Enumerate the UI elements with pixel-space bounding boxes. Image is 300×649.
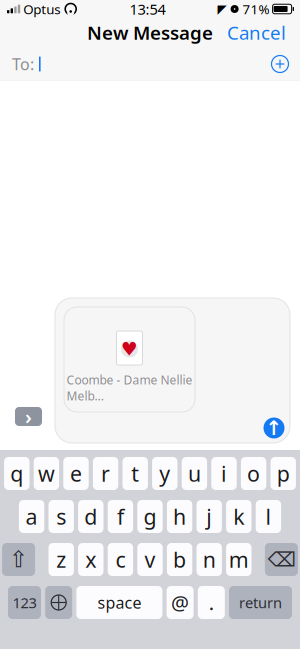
staticText: e [70, 459, 82, 488]
button[interactable]: r [93, 457, 118, 490]
button[interactable]: u [182, 457, 207, 490]
button[interactable]: f [108, 500, 133, 533]
button[interactable]: w [34, 457, 59, 490]
button[interactable]: Show apps [13, 405, 44, 428]
staticText: ◤ [218, 2, 227, 16]
button[interactable]: y [152, 457, 177, 490]
button[interactable]: s [48, 500, 74, 533]
staticText: ♥ [121, 338, 138, 360]
staticText: b [173, 545, 186, 574]
staticText: i [221, 459, 227, 488]
staticText: q [10, 459, 23, 488]
staticText: d [84, 502, 97, 531]
button[interactable]: e [63, 457, 89, 490]
staticText: ↑ [265, 417, 282, 439]
staticText: y [159, 459, 170, 488]
staticText: c [115, 545, 125, 574]
button[interactable]: j [196, 500, 222, 533]
staticText: s [56, 502, 66, 531]
staticText: ⇧ [9, 547, 28, 572]
staticText: u [188, 459, 201, 488]
button[interactable]: return [229, 586, 292, 619]
staticText: a [26, 502, 38, 531]
staticText: p [277, 459, 290, 488]
staticText: ⌫ [267, 548, 295, 571]
button[interactable]: m [226, 543, 251, 576]
staticText: space [97, 592, 141, 613]
staticText: t [131, 459, 139, 488]
staticText: 123 [12, 593, 36, 612]
button[interactable]: ♥ [64, 307, 195, 412]
button[interactable]: Cancel [217, 12, 296, 53]
staticText: g [143, 502, 156, 531]
button[interactable]: x [78, 543, 103, 576]
button[interactable]: Shift [2, 543, 35, 576]
staticText: f [117, 502, 124, 531]
staticText: To: [12, 53, 34, 75]
staticText: Coombe - Dame Nellie Melb… [66, 372, 192, 404]
button[interactable]: p [270, 457, 296, 490]
button[interactable]: n [196, 543, 222, 576]
staticText: Optus [23, 0, 60, 18]
staticText: m [229, 545, 249, 574]
staticText: Cancel [227, 20, 286, 45]
button[interactable]: Add contact [265, 49, 295, 79]
staticText: z [56, 545, 66, 574]
button[interactable]: d [78, 500, 103, 533]
button[interactable]: i [211, 457, 237, 490]
button[interactable]: t [122, 457, 148, 490]
staticText: k [233, 502, 244, 531]
staticText: l [265, 502, 271, 531]
staticText: 13:54 [129, 0, 165, 19]
staticText: x [85, 545, 96, 574]
button[interactable]: k [226, 500, 251, 533]
staticText: o [247, 459, 260, 488]
button[interactable]: space [76, 586, 162, 619]
button[interactable]: g [137, 500, 163, 533]
button[interactable]: Next keyboard [45, 586, 72, 619]
button[interactable]: v [137, 543, 163, 576]
staticText: w [38, 459, 55, 488]
staticText: . [209, 589, 214, 616]
button[interactable]: h [167, 500, 192, 533]
staticText: › [25, 403, 32, 430]
button[interactable]: . [198, 586, 225, 619]
button[interactable]: o [241, 457, 266, 490]
staticText: h [173, 502, 186, 531]
staticText: j [206, 502, 212, 531]
button[interactable]: @ [167, 586, 194, 619]
button[interactable]: q [4, 457, 29, 490]
staticText: return [239, 593, 282, 612]
staticText: v [144, 545, 155, 574]
button[interactable]: l [256, 500, 281, 533]
staticText: 71% [243, 0, 270, 18]
button[interactable]: Delete [265, 543, 298, 576]
staticText: r [101, 459, 110, 488]
button[interactable]: c [108, 543, 133, 576]
button[interactable]: a [19, 500, 44, 533]
staticText: n [203, 545, 216, 574]
button[interactable]: b [167, 543, 192, 576]
button[interactable]: z [48, 543, 74, 576]
staticText: @ [171, 589, 189, 616]
button[interactable]: Send [261, 415, 287, 441]
staticText: New Message [87, 20, 213, 45]
button[interactable]: 123 [8, 586, 41, 619]
